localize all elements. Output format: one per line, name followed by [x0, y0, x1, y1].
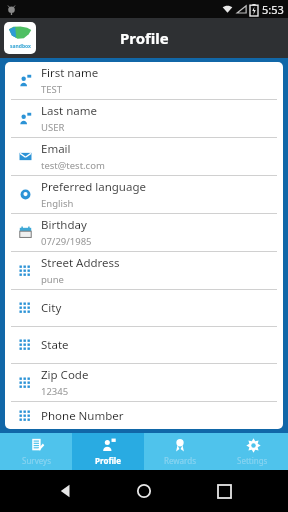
button[interactable]: Surveys	[0, 433, 72, 470]
staticText: Email	[41, 141, 71, 157]
staticText: Settings	[237, 455, 268, 466]
staticText: Surveys	[22, 455, 51, 466]
button[interactable]: Home	[129, 476, 159, 506]
button[interactable]: App logo	[4, 22, 36, 54]
staticText: State	[41, 337, 69, 353]
button[interactable]: Recents	[209, 476, 239, 506]
staticText: Phone Number	[41, 408, 124, 424]
staticText: 12345	[41, 385, 69, 398]
button[interactable]: Street Address	[5, 252, 283, 289]
staticText: 07/29/1985	[41, 235, 92, 248]
button[interactable]: Birthday	[5, 214, 283, 251]
staticText: USER	[41, 121, 65, 134]
button[interactable]: State	[5, 327, 283, 363]
button[interactable]: Last name	[5, 100, 283, 137]
button[interactable]: Zip Code	[5, 364, 283, 401]
button[interactable]: Email	[5, 138, 283, 175]
staticText: English	[41, 197, 74, 210]
button[interactable]: Preferred language	[5, 176, 283, 213]
button[interactable]: First name	[5, 62, 283, 99]
staticText: sandbox	[10, 43, 31, 50]
staticText: Preferred language	[41, 179, 146, 195]
staticText: Street Address	[41, 255, 120, 271]
staticText: 5:53	[262, 2, 284, 17]
button[interactable]: Phone Number	[5, 402, 283, 429]
staticText: First name	[41, 65, 99, 81]
staticText: Profile	[95, 455, 122, 466]
staticText: pune	[41, 273, 64, 286]
button[interactable]: Profile	[72, 433, 144, 470]
button[interactable]: Settings	[216, 433, 288, 470]
staticText: Birthday	[41, 217, 87, 233]
staticText: Profile	[120, 28, 169, 48]
button[interactable]: Back	[50, 476, 80, 506]
staticText: Zip Code	[41, 367, 89, 383]
staticText: test@test.com	[41, 159, 105, 172]
staticText: City	[41, 300, 62, 316]
staticText: TEST	[41, 83, 63, 96]
staticText: Last name	[41, 103, 97, 119]
staticText: Rewards	[164, 455, 196, 466]
button[interactable]: City	[5, 290, 283, 326]
button[interactable]: Rewards	[144, 433, 216, 470]
